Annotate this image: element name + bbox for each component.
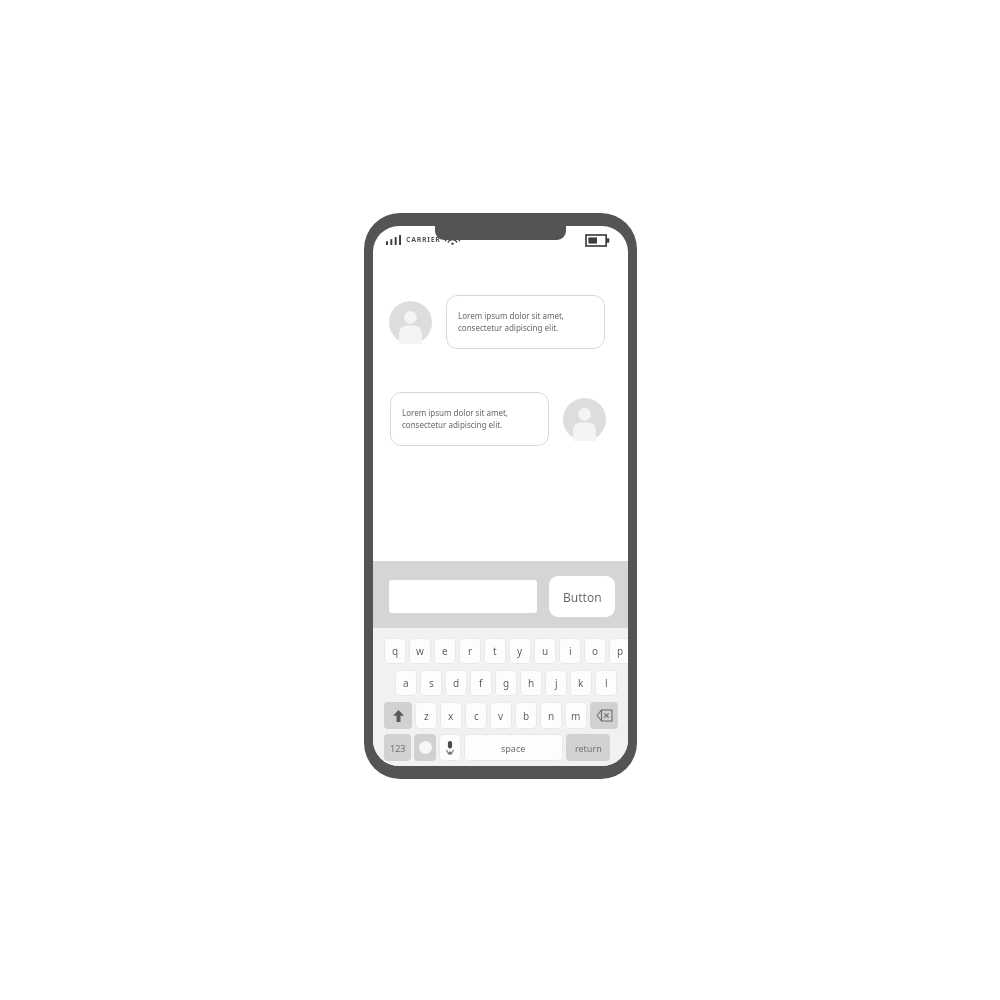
button[interactable]: space xyxy=(464,734,563,761)
staticText: m xyxy=(571,709,581,723)
staticText: d xyxy=(453,676,460,690)
button[interactable]: Lorem ipsum dolor sit amet, consectetur … xyxy=(390,392,549,446)
button[interactable]: n xyxy=(540,702,562,729)
staticText: u xyxy=(542,644,549,658)
staticText: s xyxy=(429,676,434,690)
button[interactable]: u xyxy=(534,638,556,664)
button[interactable]: k xyxy=(570,670,592,696)
button[interactable]: s xyxy=(420,670,442,696)
staticText: o xyxy=(592,644,599,658)
staticText: g xyxy=(503,676,510,690)
button[interactable]: m xyxy=(565,702,587,729)
staticText: a xyxy=(403,676,409,690)
button[interactable]: c xyxy=(465,702,487,729)
staticText: CARRIER xyxy=(406,235,441,245)
button[interactable]: f xyxy=(470,670,492,696)
staticText: l xyxy=(605,676,608,690)
button[interactable]: h xyxy=(520,670,542,696)
staticText: x xyxy=(448,709,454,723)
button[interactable]: w xyxy=(409,638,431,664)
button[interactable]: l xyxy=(595,670,617,696)
button[interactable]: i xyxy=(559,638,581,664)
staticText: j xyxy=(555,676,558,690)
staticText: t xyxy=(493,644,497,658)
staticText: space xyxy=(501,742,526,754)
button[interactable]: z xyxy=(415,702,437,729)
button[interactable]: 123 xyxy=(384,734,411,761)
button[interactable]: o xyxy=(584,638,606,664)
button[interactable]: Button xyxy=(549,576,615,617)
button[interactable]: a xyxy=(395,670,417,696)
button[interactable]: Emoji xyxy=(414,734,436,761)
staticText: b xyxy=(523,709,530,723)
button[interactable]: Shift xyxy=(384,702,412,729)
staticText: c xyxy=(474,709,479,723)
staticText: 123 xyxy=(390,742,406,754)
button[interactable]: return xyxy=(566,734,610,761)
staticText: Lorem ipsum dolor sit amet, consectetur … xyxy=(458,310,564,334)
staticText: f xyxy=(479,676,483,690)
staticText: Button xyxy=(563,589,602,605)
button[interactable]: r xyxy=(459,638,481,664)
staticText: q xyxy=(392,644,399,658)
staticText: y xyxy=(517,644,523,658)
staticText: w xyxy=(416,644,424,658)
button[interactable]: y xyxy=(509,638,531,664)
button[interactable]: Backspace xyxy=(590,702,618,729)
staticText: h xyxy=(528,676,535,690)
button[interactable]: x xyxy=(440,702,462,729)
staticText: Lorem ipsum dolor sit amet, consectetur … xyxy=(402,407,508,431)
button[interactable]: Dictate xyxy=(439,734,461,761)
staticText: r xyxy=(468,644,473,658)
button[interactable]: j xyxy=(545,670,567,696)
button[interactable]: t xyxy=(484,638,506,664)
staticText: n xyxy=(548,709,555,723)
staticText: v xyxy=(498,709,504,723)
staticText: e xyxy=(442,644,448,658)
button[interactable]: g xyxy=(495,670,517,696)
staticText: return xyxy=(575,742,602,754)
button[interactable]: d xyxy=(445,670,467,696)
button[interactable]: e xyxy=(434,638,456,664)
button[interactable]: q xyxy=(384,638,406,664)
button[interactable]: Lorem ipsum dolor sit amet, consectetur … xyxy=(389,295,605,349)
staticText: p xyxy=(617,644,624,658)
staticText: z xyxy=(424,709,429,723)
button[interactable]: Lorem ipsum dolor sit amet, consectetur … xyxy=(446,295,605,349)
button[interactable]: p xyxy=(609,638,628,664)
button[interactable]: Lorem ipsum dolor sit amet, consectetur … xyxy=(390,392,606,446)
button[interactable]: b xyxy=(515,702,537,729)
button[interactable]: v xyxy=(490,702,512,729)
staticText: k xyxy=(578,676,584,690)
staticText: i xyxy=(569,644,572,658)
